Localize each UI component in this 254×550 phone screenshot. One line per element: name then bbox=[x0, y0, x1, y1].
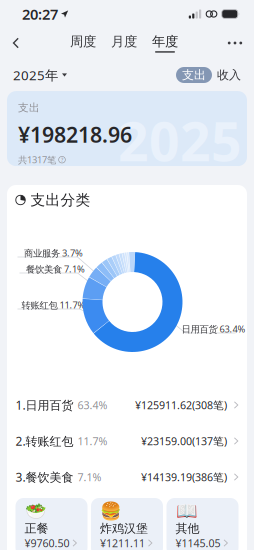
staticText: 收入 bbox=[217, 68, 241, 82]
staticText: 支出分类 bbox=[30, 191, 90, 209]
staticText: 7.1% bbox=[77, 470, 101, 484]
button[interactable]: 3.餐饮美食 bbox=[5, 459, 245, 495]
button[interactable]: More options bbox=[216, 30, 254, 56]
staticText: 转账红包 11.7% bbox=[21, 299, 85, 311]
staticText: ¥9760.50 bbox=[24, 536, 69, 550]
button[interactable]: 📖 bbox=[166, 498, 238, 550]
button[interactable]: Back bbox=[0, 30, 32, 56]
staticText: 🥗 bbox=[24, 501, 46, 521]
staticText: ¥23159.00(137笔) bbox=[141, 434, 227, 448]
staticText: 20:27 bbox=[22, 4, 58, 24]
staticText: 年度 bbox=[152, 33, 178, 50]
button[interactable]: 2025年 bbox=[13, 61, 67, 89]
staticText: ? bbox=[61, 156, 63, 163]
staticText: ¥1145.05 bbox=[175, 536, 220, 550]
button[interactable]: 支出 bbox=[176, 67, 212, 83]
button[interactable]: 1.日用百货 bbox=[5, 387, 245, 423]
staticText: 3.餐饮美食 bbox=[15, 469, 77, 485]
staticText: 63.4% bbox=[77, 398, 107, 412]
staticText: 11.7% bbox=[77, 434, 107, 448]
button[interactable]: 年度 bbox=[144, 31, 185, 55]
staticText: ¥198218.96 bbox=[18, 120, 132, 148]
button[interactable]: 收入 bbox=[212, 67, 246, 83]
staticText: 🍔 bbox=[100, 501, 122, 521]
staticText: 📖 bbox=[175, 501, 197, 521]
staticText: 2.转账红包 bbox=[15, 433, 77, 449]
button[interactable]: 周度 bbox=[62, 31, 103, 55]
staticText: 共1317笔 bbox=[18, 153, 56, 166]
staticText: 商业服务 3.7% bbox=[24, 247, 83, 259]
staticText: 其他 bbox=[175, 521, 199, 536]
staticText: ¥125911.62(308笔) bbox=[135, 398, 227, 412]
staticText: 餐饮美食 7.1% bbox=[26, 263, 85, 275]
button[interactable]: 2.转账红包 bbox=[5, 423, 245, 459]
staticText: 2025年 bbox=[13, 66, 58, 84]
staticText: 正餐 bbox=[24, 521, 48, 536]
staticText: 1.日用百货 bbox=[15, 397, 77, 413]
staticText: 日用百货 63.4% bbox=[181, 323, 245, 335]
staticText: 支出 bbox=[18, 101, 40, 114]
button[interactable]: 🍔 bbox=[91, 498, 163, 550]
button[interactable]: 🥗 bbox=[15, 498, 87, 550]
staticText: ¥1211.11 bbox=[100, 536, 145, 550]
staticText: ¥14139.19(386笔) bbox=[141, 470, 227, 484]
staticText: 2025 bbox=[118, 105, 242, 176]
staticText: 周度 bbox=[70, 33, 96, 50]
staticText: 支出 bbox=[182, 68, 206, 82]
staticText: 炸鸡汉堡 bbox=[100, 521, 148, 536]
staticText: 月度 bbox=[111, 33, 137, 50]
button[interactable]: 月度 bbox=[103, 31, 144, 55]
